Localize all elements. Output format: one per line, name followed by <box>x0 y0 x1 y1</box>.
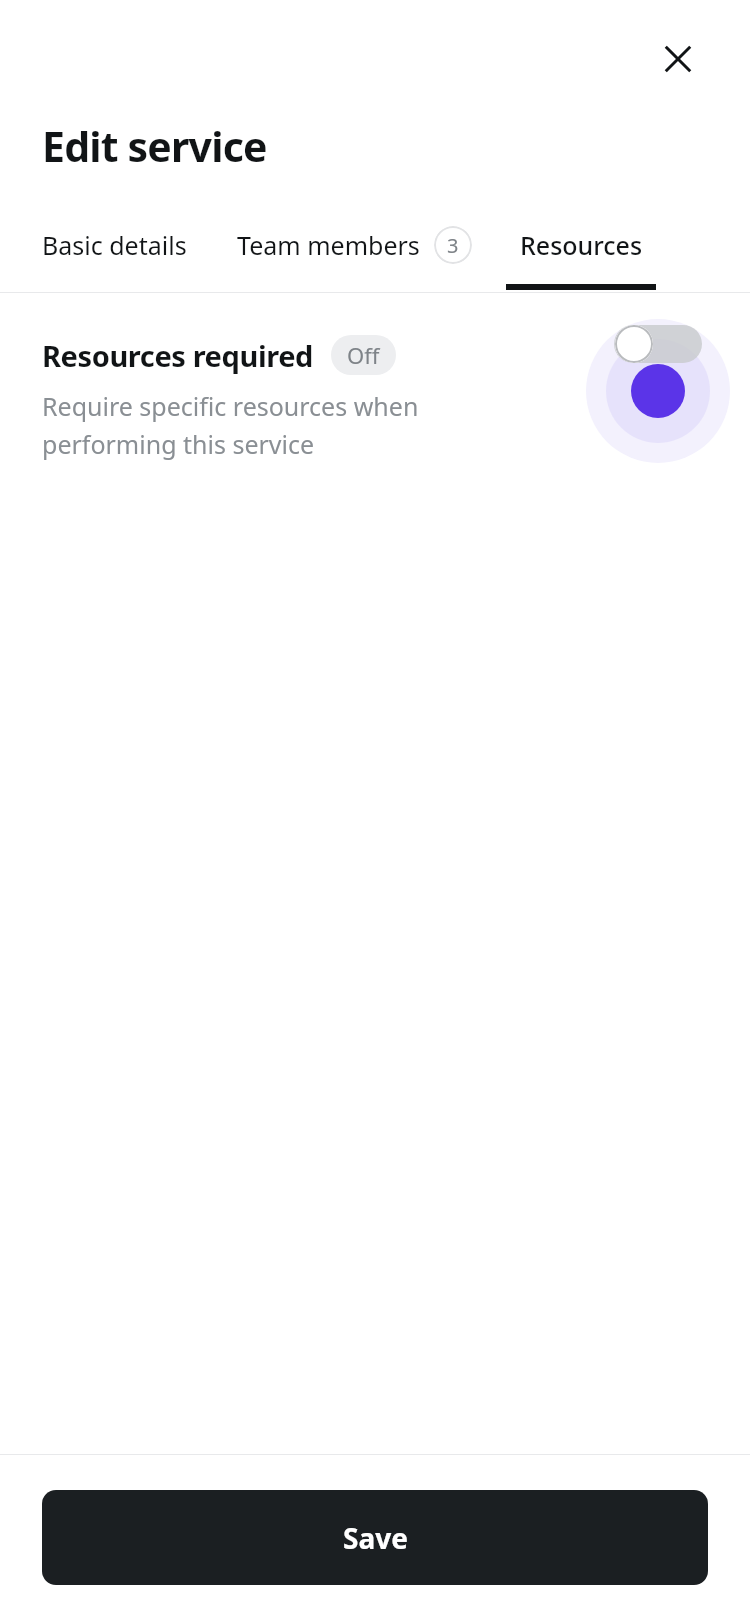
staticText: Basic details <box>42 228 187 262</box>
button[interactable]: Resources required toggle, off <box>584 307 732 455</box>
staticText: Off <box>347 340 380 370</box>
staticText: Edit service <box>42 118 267 174</box>
staticText: Resources required <box>42 336 313 375</box>
button[interactable]: Resources required <box>0 293 750 483</box>
staticText: Require specific resources when performi… <box>42 389 419 461</box>
staticText: Team members <box>237 228 420 262</box>
button[interactable]: Resources <box>506 220 656 292</box>
staticText: Save <box>343 1519 408 1557</box>
staticText: 3 <box>447 232 459 259</box>
button[interactable]: Basic details <box>42 220 187 292</box>
staticText: Resources <box>520 228 643 262</box>
button[interactable]: Team members <box>237 220 472 292</box>
button[interactable]: Close <box>652 33 704 85</box>
button[interactable]: Save <box>42 1490 708 1585</box>
